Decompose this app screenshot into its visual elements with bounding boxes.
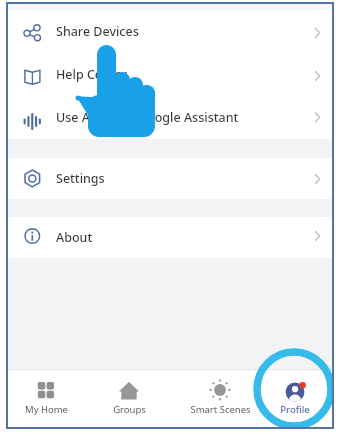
- staticText: Help Center: [56, 66, 128, 83]
- button[interactable]: Use App with Google Assistant: [6, 96, 334, 139]
- button[interactable]: My Home: [8, 370, 84, 428]
- button[interactable]: Share Devices: [6, 10, 334, 53]
- staticText: Settings: [56, 170, 105, 187]
- button[interactable]: Smart Scenes: [182, 370, 258, 428]
- staticText: Smart Scenes: [190, 403, 251, 416]
- staticText: Use App with Google Assistant: [56, 109, 239, 126]
- staticText: About: [56, 229, 93, 246]
- button[interactable]: About: [6, 217, 334, 258]
- staticText: Profile: [280, 403, 310, 416]
- staticText: My Home: [25, 403, 68, 416]
- button[interactable]: Help Center: [6, 53, 334, 96]
- button[interactable]: Settings: [6, 158, 334, 199]
- button[interactable]: Profile: [257, 370, 333, 428]
- staticText: Groups: [113, 403, 146, 416]
- staticText: Share Devices: [56, 23, 139, 40]
- button[interactable]: Groups: [91, 370, 167, 428]
